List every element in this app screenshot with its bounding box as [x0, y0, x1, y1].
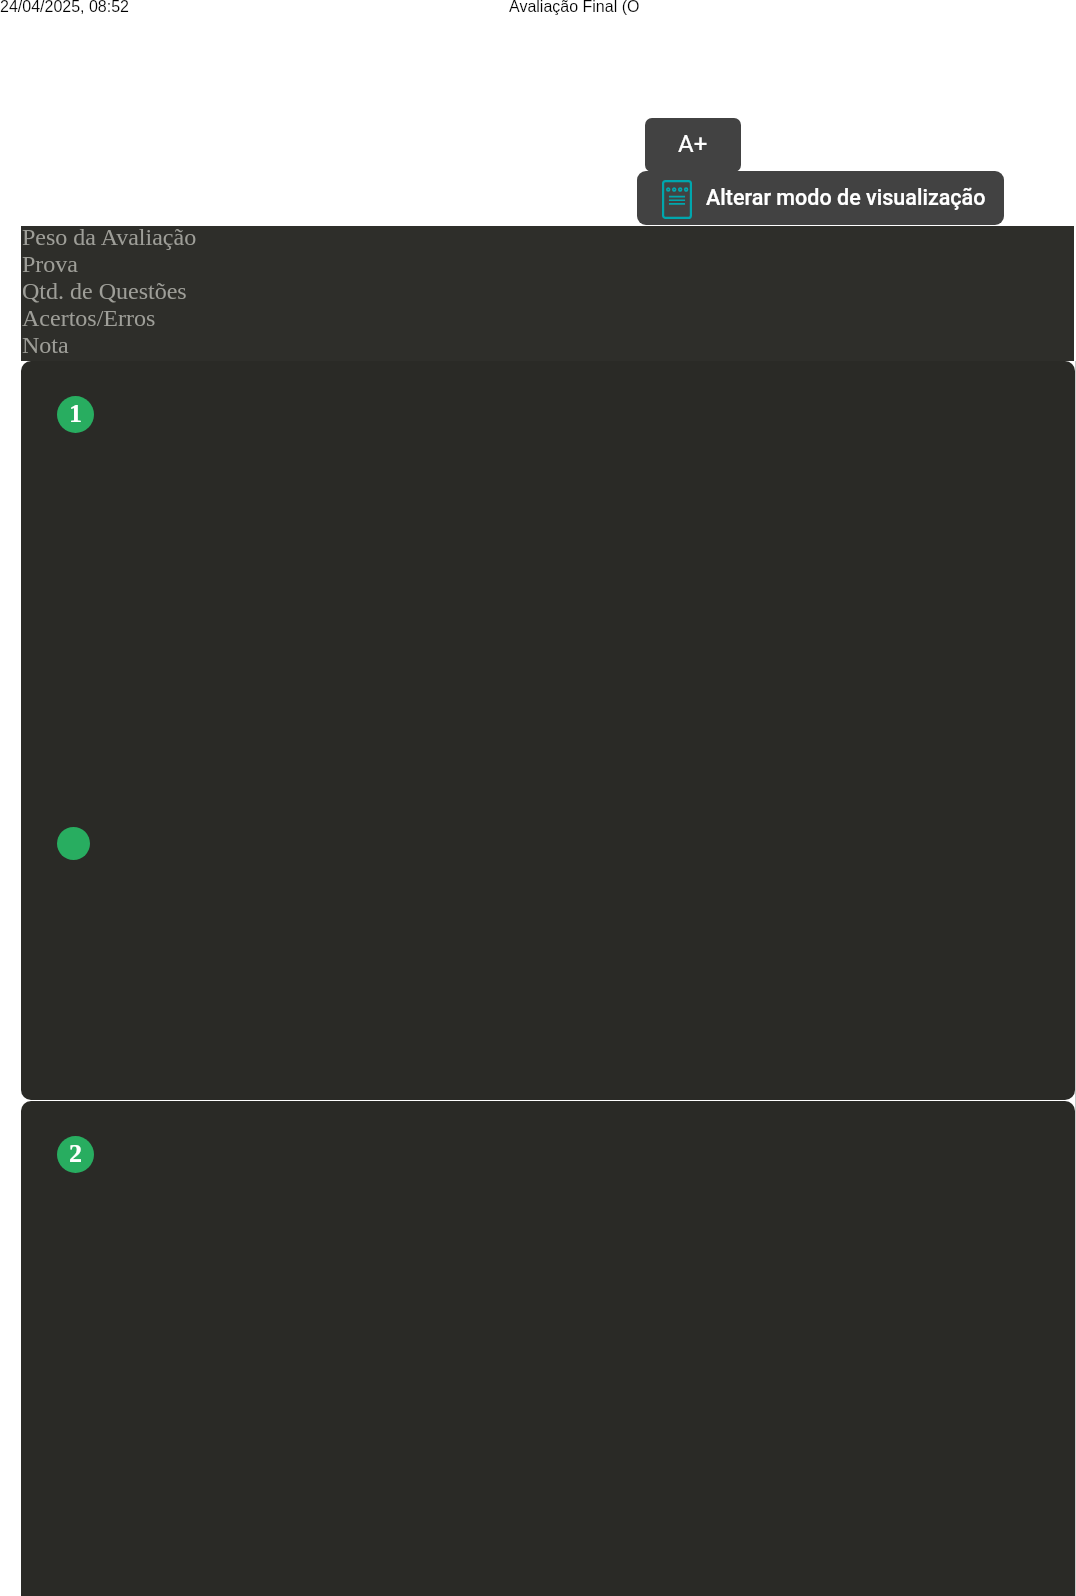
- button[interactable]: Alterar modo de visualização: [637, 171, 1004, 225]
- button[interactable]: 2: [21, 1101, 1075, 1596]
- staticText: Avaliação Final (O: [509, 0, 640, 16]
- button[interactable]: Aumentar tamanho da fonte: [645, 118, 741, 172]
- other: Resposta correta: [57, 827, 90, 860]
- staticText: 2: [69, 1139, 82, 1168]
- staticText: A+: [678, 130, 708, 158]
- button[interactable]: 1: [21, 361, 1075, 1100]
- other: Alterar modo de visualização: [662, 180, 692, 219]
- staticText: Peso da Avaliação: [22, 224, 197, 251]
- staticText: Nota: [22, 332, 69, 359]
- staticText: 1: [69, 399, 82, 428]
- staticText: 24/04/2025, 08:52: [0, 0, 130, 16]
- button[interactable]: 2: [57, 1136, 94, 1173]
- staticText: Acertos/Erros: [22, 305, 156, 332]
- staticText: Prova: [22, 251, 78, 278]
- staticText: Qtd. de Questões: [22, 278, 187, 305]
- button[interactable]: 1: [57, 396, 94, 433]
- staticText: Alterar modo de visualização: [706, 185, 986, 210]
